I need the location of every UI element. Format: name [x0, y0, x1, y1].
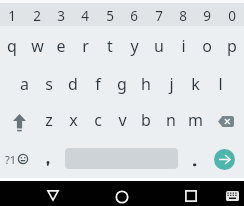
button[interactable]: d — [61, 66, 85, 102]
button[interactable]: e — [49, 29, 73, 63]
staticText: q — [7, 35, 17, 57]
staticText: 0 — [228, 7, 236, 25]
staticText: o — [202, 35, 212, 57]
button[interactable]: h — [134, 66, 158, 102]
button[interactable]: 1 — [0, 4, 24, 28]
button[interactable]: o — [195, 29, 219, 63]
staticText: j — [169, 73, 174, 95]
button[interactable]: b — [134, 102, 158, 138]
staticText: h — [141, 73, 151, 95]
button[interactable]: m — [183, 102, 207, 138]
button[interactable]: v — [110, 102, 134, 138]
button[interactable] — [222, 182, 244, 205]
staticText: t — [107, 35, 113, 57]
staticText: w — [31, 35, 44, 57]
staticText: m — [188, 109, 203, 131]
staticText: d — [68, 73, 78, 95]
staticText: 3 — [57, 7, 65, 25]
staticText: 2 — [33, 7, 41, 25]
button[interactable]: 0 — [220, 4, 244, 28]
button[interactable] — [110, 182, 134, 205]
staticText: k — [191, 73, 200, 95]
button[interactable]: i — [171, 29, 195, 63]
staticText: c — [94, 109, 102, 131]
staticText: r — [82, 35, 89, 57]
staticText: 4 — [81, 7, 89, 25]
button[interactable]: n — [159, 102, 183, 138]
staticText: x — [69, 109, 78, 131]
button[interactable]: ?1 — [0, 142, 36, 176]
button[interactable]: s — [37, 66, 61, 102]
button[interactable] — [36, 142, 60, 176]
button[interactable]: j — [159, 66, 183, 102]
staticText: u — [154, 35, 164, 57]
button[interactable] — [209, 104, 243, 139]
staticText: s — [45, 73, 53, 95]
staticText: 7 — [155, 7, 163, 25]
button[interactable] — [40, 182, 65, 205]
button[interactable]: l — [208, 66, 232, 102]
staticText: ?1 — [5, 152, 17, 167]
button[interactable] — [179, 182, 203, 205]
staticText: 8 — [179, 7, 187, 25]
button[interactable]: 4 — [73, 4, 97, 28]
button[interactable]: q — [0, 29, 24, 63]
button[interactable] — [3, 103, 36, 138]
staticText: v — [118, 109, 127, 131]
button[interactable]: 7 — [147, 4, 171, 28]
button[interactable]: u — [147, 29, 171, 63]
staticText: b — [141, 109, 151, 131]
staticText: g — [117, 73, 127, 95]
staticText: z — [45, 109, 53, 131]
button[interactable]: k — [183, 66, 207, 102]
staticText: i — [181, 35, 186, 57]
staticText: p — [227, 35, 237, 57]
button[interactable]: 8 — [171, 4, 195, 28]
button[interactable]: x — [61, 102, 85, 138]
button[interactable]: w — [25, 29, 49, 63]
staticText: 9 — [203, 7, 211, 25]
button[interactable]: 5 — [98, 4, 122, 28]
button[interactable]: 2 — [25, 4, 49, 28]
button[interactable]: p — [220, 29, 244, 63]
button[interactable] — [214, 149, 235, 170]
button[interactable]: r — [73, 29, 97, 63]
button[interactable]: t — [98, 29, 122, 63]
button[interactable] — [183, 142, 207, 176]
staticText: e — [56, 35, 66, 57]
staticText: 5 — [106, 7, 114, 25]
staticText: y — [130, 35, 139, 57]
button[interactable]: y — [122, 29, 146, 63]
staticText: f — [95, 73, 101, 95]
button[interactable]: 6 — [122, 4, 146, 28]
button[interactable]: f — [86, 66, 110, 102]
button[interactable]: c — [86, 102, 110, 138]
button[interactable]: g — [110, 66, 134, 102]
button[interactable]: 9 — [195, 4, 219, 28]
staticText: n — [166, 109, 176, 131]
staticText: 6 — [130, 7, 138, 25]
staticText: l — [218, 73, 223, 95]
button[interactable]: z — [37, 102, 61, 138]
button[interactable]: 3 — [49, 4, 73, 28]
staticText: 1 — [8, 7, 16, 25]
staticText: a — [20, 73, 29, 95]
button[interactable]: a — [12, 66, 36, 102]
